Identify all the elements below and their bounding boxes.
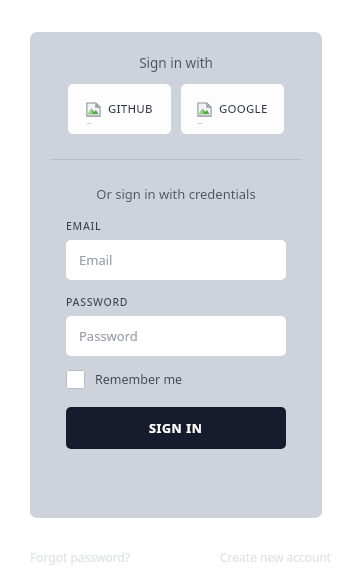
button[interactable]: Forgot password?: [30, 549, 131, 565]
staticText: Password: [79, 327, 138, 345]
staticText: GITHUB: [108, 101, 153, 117]
staticText: PASSWORD: [66, 295, 129, 309]
staticText: SIGN IN: [149, 420, 203, 437]
staticText: EMAIL: [66, 219, 102, 233]
staticText: Remember me: [95, 371, 183, 388]
staticText: GOOGLE: [219, 101, 268, 117]
staticText: Forgot password?: [30, 549, 131, 565]
staticText: Create new account: [220, 549, 332, 565]
button[interactable]: Email: [66, 240, 286, 280]
button[interactable]: Create new account: [220, 549, 332, 565]
button[interactable]: ..: [181, 84, 284, 134]
staticText: ..: [198, 117, 202, 127]
staticText: Or sign in with credentials: [30, 185, 322, 203]
button[interactable]: SIGN IN: [66, 407, 286, 449]
staticText: ..: [87, 117, 91, 127]
button[interactable]: ..: [68, 84, 171, 134]
button[interactable]: Remember me: [66, 370, 183, 389]
staticText: Sign in with: [30, 54, 322, 72]
button[interactable]: Password: [66, 316, 286, 356]
staticText: Email: [79, 251, 113, 269]
